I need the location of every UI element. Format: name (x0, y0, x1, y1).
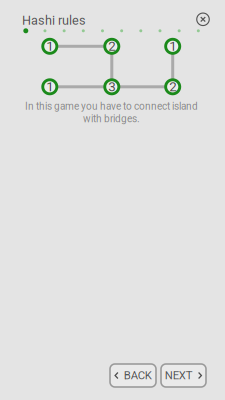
staticText: 2 (169, 79, 176, 95)
staticText: 1 (169, 38, 176, 54)
staticText: In this game you have to connect island (25, 100, 198, 112)
staticText: 1 (46, 79, 53, 95)
staticText: NEXT (165, 369, 193, 382)
staticText: with bridges. (83, 113, 140, 125)
button[interactable]: BACK (110, 364, 156, 387)
staticText: 1 (46, 38, 53, 54)
staticText: BACK (124, 369, 152, 382)
staticText: 2 (108, 38, 115, 54)
staticText: 3 (108, 79, 115, 95)
button[interactable]: Close (192, 8, 214, 30)
staticText: Hashi rules (22, 13, 86, 28)
button[interactable]: NEXT (161, 364, 206, 387)
